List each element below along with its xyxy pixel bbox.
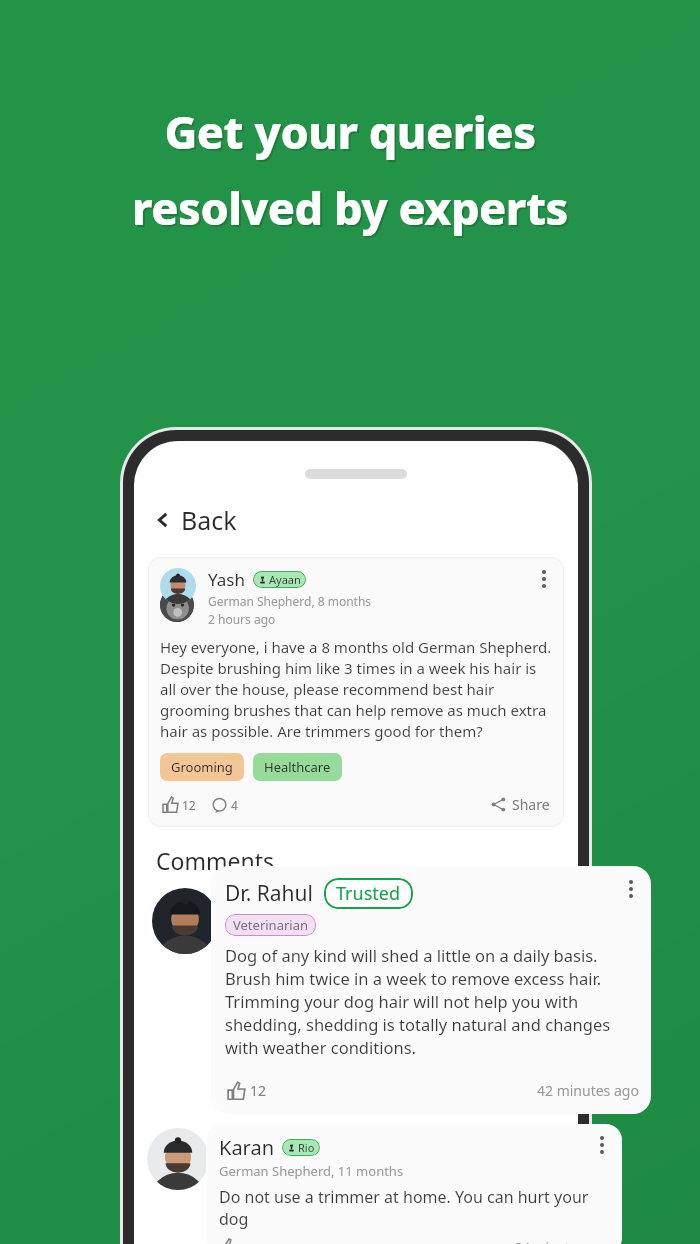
staticText: Get your queries [164, 101, 536, 162]
button[interactable]: 12 [225, 1079, 269, 1102]
staticText: 42 minutes ago [537, 1081, 639, 1100]
button[interactable]: Share [489, 793, 552, 816]
staticText: 4 [231, 797, 238, 813]
staticText: Dr. Rahul [225, 879, 313, 908]
staticText: Rio [298, 1140, 315, 1155]
other: Back [154, 511, 172, 529]
staticText: German Shepherd, 11 months [219, 1162, 404, 1180]
staticText: 2 hours ago [208, 611, 276, 627]
staticText: Ayaan [269, 572, 301, 587]
button[interactable]: More options [623, 878, 639, 900]
staticText: Comments [156, 845, 274, 876]
button[interactable]: More options [594, 1134, 610, 1156]
button[interactable]: Karan [206, 1124, 622, 1244]
staticText: 12 [250, 1081, 267, 1100]
button[interactable]: Back [134, 499, 578, 541]
staticText: Back [181, 503, 237, 537]
staticText: 34 minutes ago [515, 1238, 610, 1244]
staticText: German Shepherd, 8 months [208, 593, 372, 609]
staticText: 12 [182, 797, 196, 813]
button[interactable]: More options [536, 568, 552, 590]
staticText: Veterinarian [233, 916, 308, 934]
staticText: Hey everyone, i have a 8 months old Germ… [160, 637, 552, 742]
staticText: resolved by experts [132, 177, 568, 238]
staticText: Grooming [171, 758, 233, 776]
staticText: resolved by experts [134, 179, 570, 240]
staticText: Do not use a trimmer at home. You can hu… [219, 1186, 610, 1230]
staticText: Get your queries [166, 103, 538, 164]
staticText: Healthcare [264, 758, 331, 776]
staticText: Dog of any kind will shed a little on a … [225, 944, 639, 1059]
staticText: Yash [208, 568, 245, 591]
staticText: Trusted [336, 881, 401, 906]
button[interactable]: 12 [160, 794, 198, 815]
button[interactable]: Healthcare [253, 753, 342, 781]
button[interactable]: Grooming [160, 753, 244, 781]
button[interactable]: Dr. Rahul [211, 866, 651, 1114]
button[interactable]: Yash [148, 557, 564, 827]
staticText: Karan [219, 1134, 275, 1161]
staticText: Share [512, 795, 550, 814]
button[interactable]: 4 [210, 795, 240, 815]
